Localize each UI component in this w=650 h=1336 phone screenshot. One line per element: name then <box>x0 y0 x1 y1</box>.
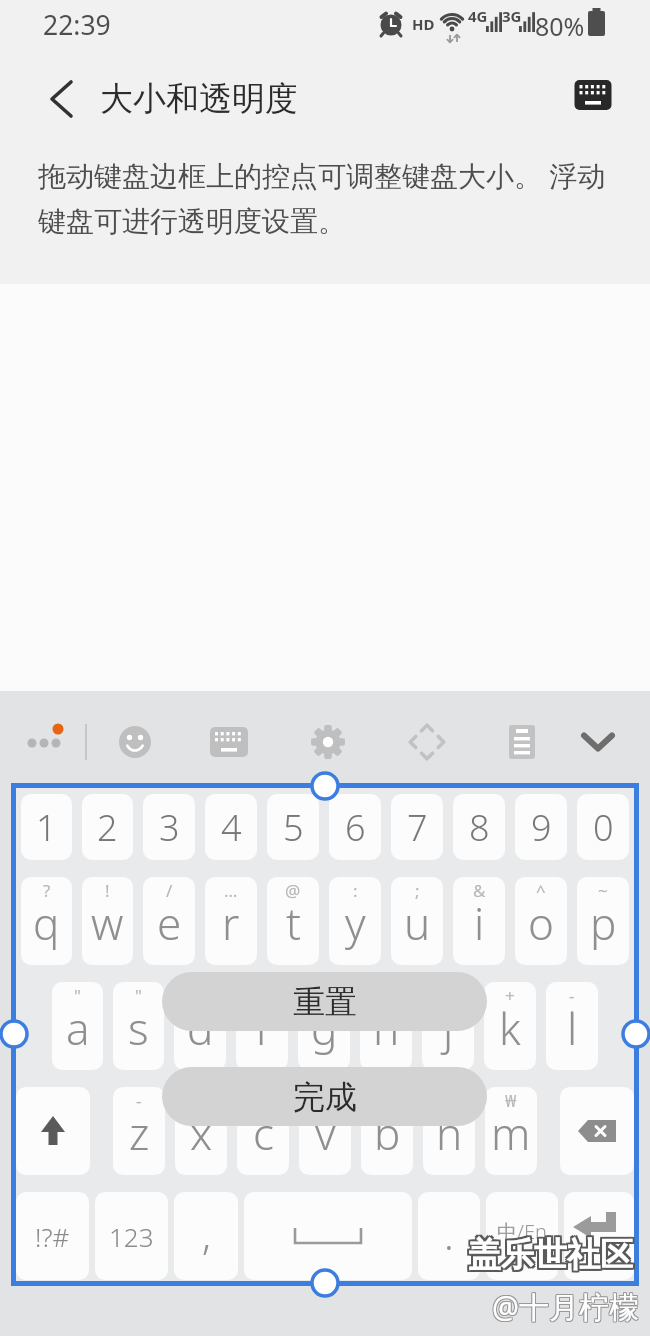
button[interactable]: ? <box>21 877 72 965</box>
staticText: 盖乐世社区 <box>466 1236 631 1278</box>
button[interactable]: !?# <box>16 1192 89 1280</box>
button[interactable]: ) <box>236 982 288 1070</box>
staticText: @十月柠檬 <box>493 1287 640 1328</box>
button[interactable]: ' <box>237 1087 289 1175</box>
button[interactable] <box>111 718 159 766</box>
button[interactable]: " <box>113 982 164 1070</box>
button[interactable]: ; <box>391 877 443 965</box>
staticText: ~ <box>598 879 608 902</box>
button[interactable] <box>304 718 352 766</box>
staticText: 123 <box>109 1219 154 1254</box>
button[interactable]: ! <box>82 877 133 965</box>
button[interactable]: ~ <box>577 877 629 965</box>
staticText: w <box>91 893 124 953</box>
button[interactable] <box>564 1192 634 1280</box>
staticText: u <box>404 893 431 953</box>
button[interactable] <box>205 718 253 766</box>
staticText: @十月柠檬 <box>491 1285 638 1326</box>
staticText: g <box>311 998 338 1058</box>
staticText: 7 <box>407 803 428 852</box>
staticText: o <box>528 893 554 953</box>
staticText: : <box>353 879 358 902</box>
button[interactable]: ÷ <box>423 1087 475 1175</box>
button[interactable]: 0 <box>577 794 629 860</box>
staticText: 盖乐世社区 <box>470 1234 635 1276</box>
staticText: … <box>224 879 238 902</box>
button[interactable]: 完成 <box>162 1067 487 1126</box>
button[interactable]: 7 <box>391 794 443 860</box>
staticText: n <box>436 1103 463 1163</box>
button[interactable]: - <box>546 982 598 1070</box>
staticText: 盖乐世社区 <box>466 1234 631 1276</box>
staticText: 中/En <box>497 1218 547 1245</box>
button[interactable]: 8 <box>453 794 505 860</box>
staticText: e <box>157 893 182 953</box>
staticText: 4 <box>221 803 242 852</box>
button[interactable]: 2 <box>82 794 133 860</box>
button[interactable]: " <box>52 982 103 1070</box>
button[interactable]: & <box>453 877 505 965</box>
button[interactable]: ` <box>360 982 412 1070</box>
button[interactable]: . <box>418 1192 480 1280</box>
button[interactable]: , <box>174 1192 238 1280</box>
staticText: p <box>590 893 617 953</box>
button[interactable] <box>403 718 451 766</box>
button[interactable] <box>498 718 546 766</box>
button[interactable]: 123 <box>95 1192 168 1280</box>
button[interactable]: 9 <box>515 794 567 860</box>
staticText: - <box>136 1089 142 1112</box>
button[interactable]: + <box>484 982 536 1070</box>
staticText: - <box>569 984 575 1007</box>
button[interactable]: 4 <box>205 794 257 860</box>
staticText: @十月柠檬 <box>492 1287 639 1328</box>
button[interactable]: ~ <box>298 982 350 1070</box>
staticText: b <box>374 1103 401 1163</box>
button[interactable] <box>560 1087 634 1175</box>
button[interactable]: _ <box>299 1087 351 1175</box>
button[interactable]: ^ <box>515 877 567 965</box>
button[interactable]: [ <box>422 982 474 1070</box>
button[interactable]: × <box>361 1087 413 1175</box>
staticText: q <box>33 893 60 953</box>
staticText: / <box>166 879 173 902</box>
staticText: s <box>128 998 149 1058</box>
button[interactable] <box>574 718 622 766</box>
button[interactable] <box>16 1087 90 1175</box>
button[interactable]: 6 <box>329 794 381 860</box>
button[interactable]: 5 <box>267 794 319 860</box>
staticText: 盖乐世社区 <box>466 1232 631 1274</box>
button[interactable]: 重置 <box>162 972 487 1031</box>
button[interactable]: ( <box>174 982 226 1070</box>
staticText: m <box>491 1103 531 1163</box>
staticText: 80% <box>535 9 585 43</box>
staticText: @十月柠檬 <box>492 1285 639 1326</box>
button[interactable]: : <box>329 877 381 965</box>
button[interactable]: - <box>113 1087 165 1175</box>
staticText: k <box>499 998 521 1058</box>
staticText: 22:39 <box>43 7 111 43</box>
button[interactable]: 1 <box>21 794 72 860</box>
button[interactable] <box>18 718 70 766</box>
button[interactable]: … <box>205 877 257 965</box>
button[interactable] <box>244 1192 412 1280</box>
button[interactable]: = <box>175 1087 227 1175</box>
button[interactable]: 3 <box>143 794 195 860</box>
staticText: 完成 <box>293 1077 357 1117</box>
staticText: 1 <box>36 803 57 852</box>
staticText: _ <box>321 1089 329 1112</box>
staticText: f <box>255 998 269 1058</box>
button[interactable]: @ <box>267 877 319 965</box>
staticText: + <box>505 984 515 1007</box>
button[interactable]: ₩ <box>485 1087 537 1175</box>
button[interactable]: 中/En <box>486 1192 558 1280</box>
staticText: !?# <box>35 1219 70 1254</box>
staticText: 盖乐世社区 <box>468 1236 633 1278</box>
button[interactable]: / <box>143 877 195 965</box>
staticText: @十月柠檬 <box>493 1285 640 1326</box>
button[interactable] <box>36 75 84 123</box>
button[interactable] <box>566 71 622 119</box>
staticText: ! <box>105 879 110 902</box>
staticText: HD <box>412 14 435 34</box>
